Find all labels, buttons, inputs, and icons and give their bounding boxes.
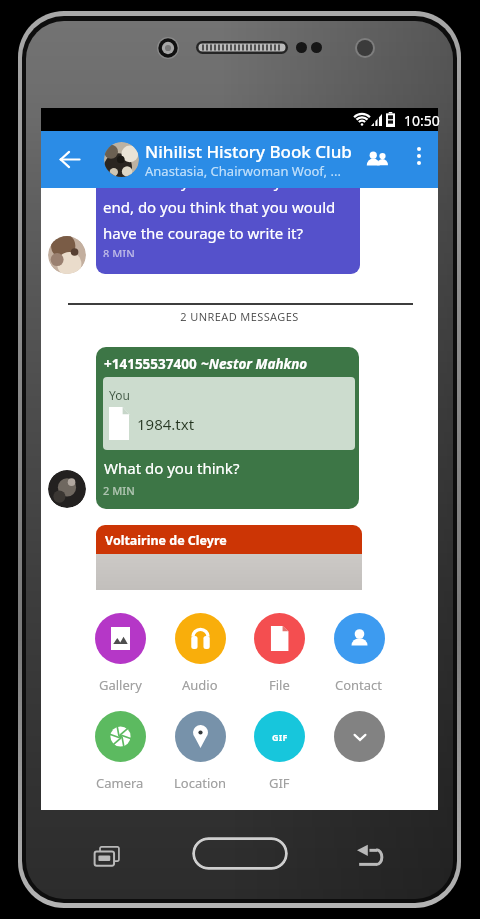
button[interactable]: More options: [403, 140, 435, 172]
button[interactable]: Recents: [86, 836, 126, 876]
button[interactable]: book what you would say at the end, do y…: [96, 188, 360, 274]
button[interactable]: Back: [350, 837, 390, 877]
staticText: Contact: [335, 676, 383, 694]
button[interactable]: Gallery: [53, 613, 187, 694]
button[interactable]: File: [212, 613, 346, 694]
staticText: File: [269, 676, 290, 694]
button[interactable]: Home: [192, 837, 288, 870]
staticText: GIF: [272, 731, 288, 743]
button[interactable]: More options: [292, 711, 426, 774]
button[interactable]: Contact: [292, 613, 426, 694]
staticText: Gallery: [99, 676, 142, 694]
button[interactable]: Camera: [53, 711, 187, 792]
staticText: Location: [174, 774, 227, 792]
staticText: What do you think?: [104, 458, 240, 478]
staticText: Nihilist History Book Club: [145, 140, 352, 163]
staticText: 2 MIN: [103, 483, 135, 498]
staticText: Anastasia, Chairwoman Woof, ...: [145, 162, 341, 180]
staticText: You: [109, 387, 130, 403]
staticText: 8 MIN: [103, 246, 135, 257]
staticText: 2 UNREAD MESSAGES: [41, 309, 438, 324]
button[interactable]: Group members: [357, 140, 397, 180]
button[interactable]: GIF: [212, 711, 346, 792]
button[interactable]: Voltairine de Cleyre: [96, 525, 362, 590]
button[interactable]: +14155537400: [96, 347, 359, 509]
staticText: +14155537400: [104, 355, 201, 373]
staticText: ~Nestor Mahkno: [201, 355, 308, 373]
staticText: 10:50: [404, 111, 440, 130]
staticText: book what you would say at the end, do y…: [103, 188, 336, 244]
staticText: Voltairine de Cleyre: [105, 532, 227, 549]
button[interactable]: Location: [133, 711, 267, 792]
button[interactable]: Back: [50, 140, 89, 179]
staticText: Camera: [96, 774, 144, 792]
staticText: GIF: [269, 774, 290, 792]
staticText: Audio: [182, 676, 218, 694]
button[interactable]: Audio: [133, 613, 267, 694]
staticText: 1984.txt: [137, 414, 195, 434]
